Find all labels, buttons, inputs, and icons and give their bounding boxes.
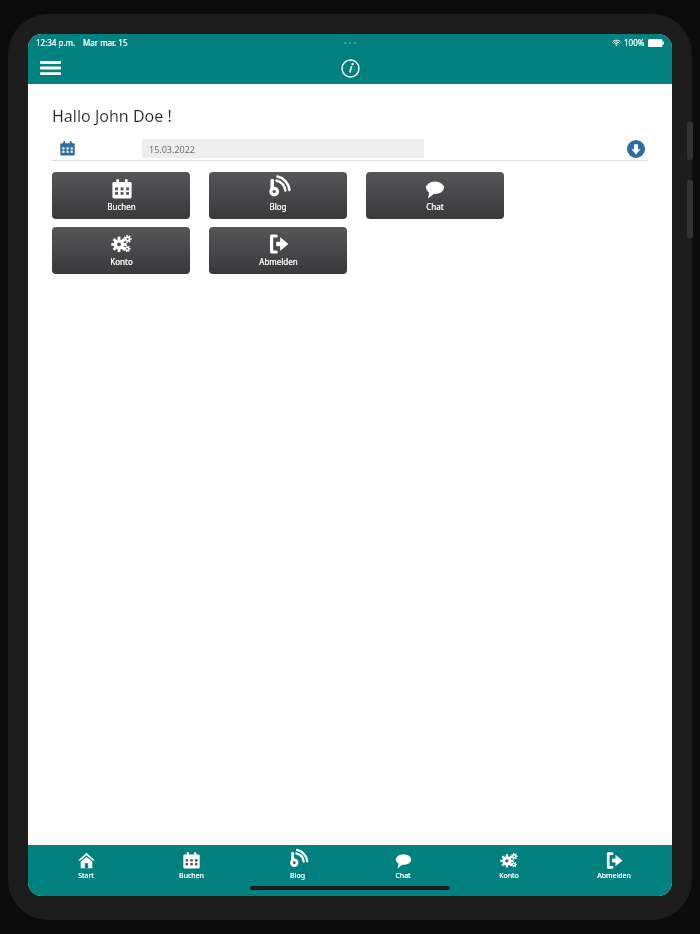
staticText: 100% [624,37,645,48]
staticText: Hallo John Doe ! [52,105,172,127]
button[interactable]: Buchen [143,851,239,882]
button[interactable]: Download [624,137,648,161]
staticText: Mar mar. 15 [83,37,128,48]
staticText: Abmelden [597,871,631,881]
button[interactable]: Blog [209,172,347,219]
staticText: Konto [110,256,133,267]
staticText: Chat [395,871,411,881]
button[interactable]: Abmelden [566,851,662,882]
button[interactable]: Konto [461,851,557,882]
button[interactable]: Info [335,53,365,83]
staticText: Blog [269,201,287,212]
button[interactable]: Blog [249,851,345,882]
button[interactable]: Konto [52,227,190,274]
button[interactable]: Menu [34,52,66,84]
button[interactable]: Chat [366,172,504,219]
staticText: Chat [426,201,444,212]
button[interactable]: Chat [355,851,451,882]
staticText: 15.03.2022 [149,143,196,155]
staticText: Start [78,871,94,881]
button[interactable]: 15.03.2022 [52,136,648,161]
button[interactable]: Buchen [52,172,190,219]
button[interactable]: Start [38,851,134,882]
button[interactable]: Abmelden [209,227,347,274]
staticText: Abmelden [259,256,298,267]
staticText: Buchen [107,201,136,212]
staticText: Blog [290,871,305,881]
staticText: 12:34 p.m. [36,37,76,48]
staticText: Konto [499,871,519,881]
staticText: Buchen [179,871,204,881]
